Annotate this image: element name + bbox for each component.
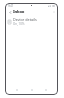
button[interactable]: Device details [6, 17, 57, 26]
staticText: Inbox [13, 9, 25, 15]
staticText: On, 10% [13, 22, 25, 26]
button[interactable]: More options [51, 9, 57, 15]
button[interactable]: Navigate up [7, 9, 13, 15]
button[interactable]: Back [14, 87, 20, 93]
button[interactable]: Recents [43, 87, 49, 93]
staticText: 9:41 [8, 4, 14, 8]
staticText: Device details [13, 17, 37, 22]
button[interactable]: Home [29, 87, 35, 93]
